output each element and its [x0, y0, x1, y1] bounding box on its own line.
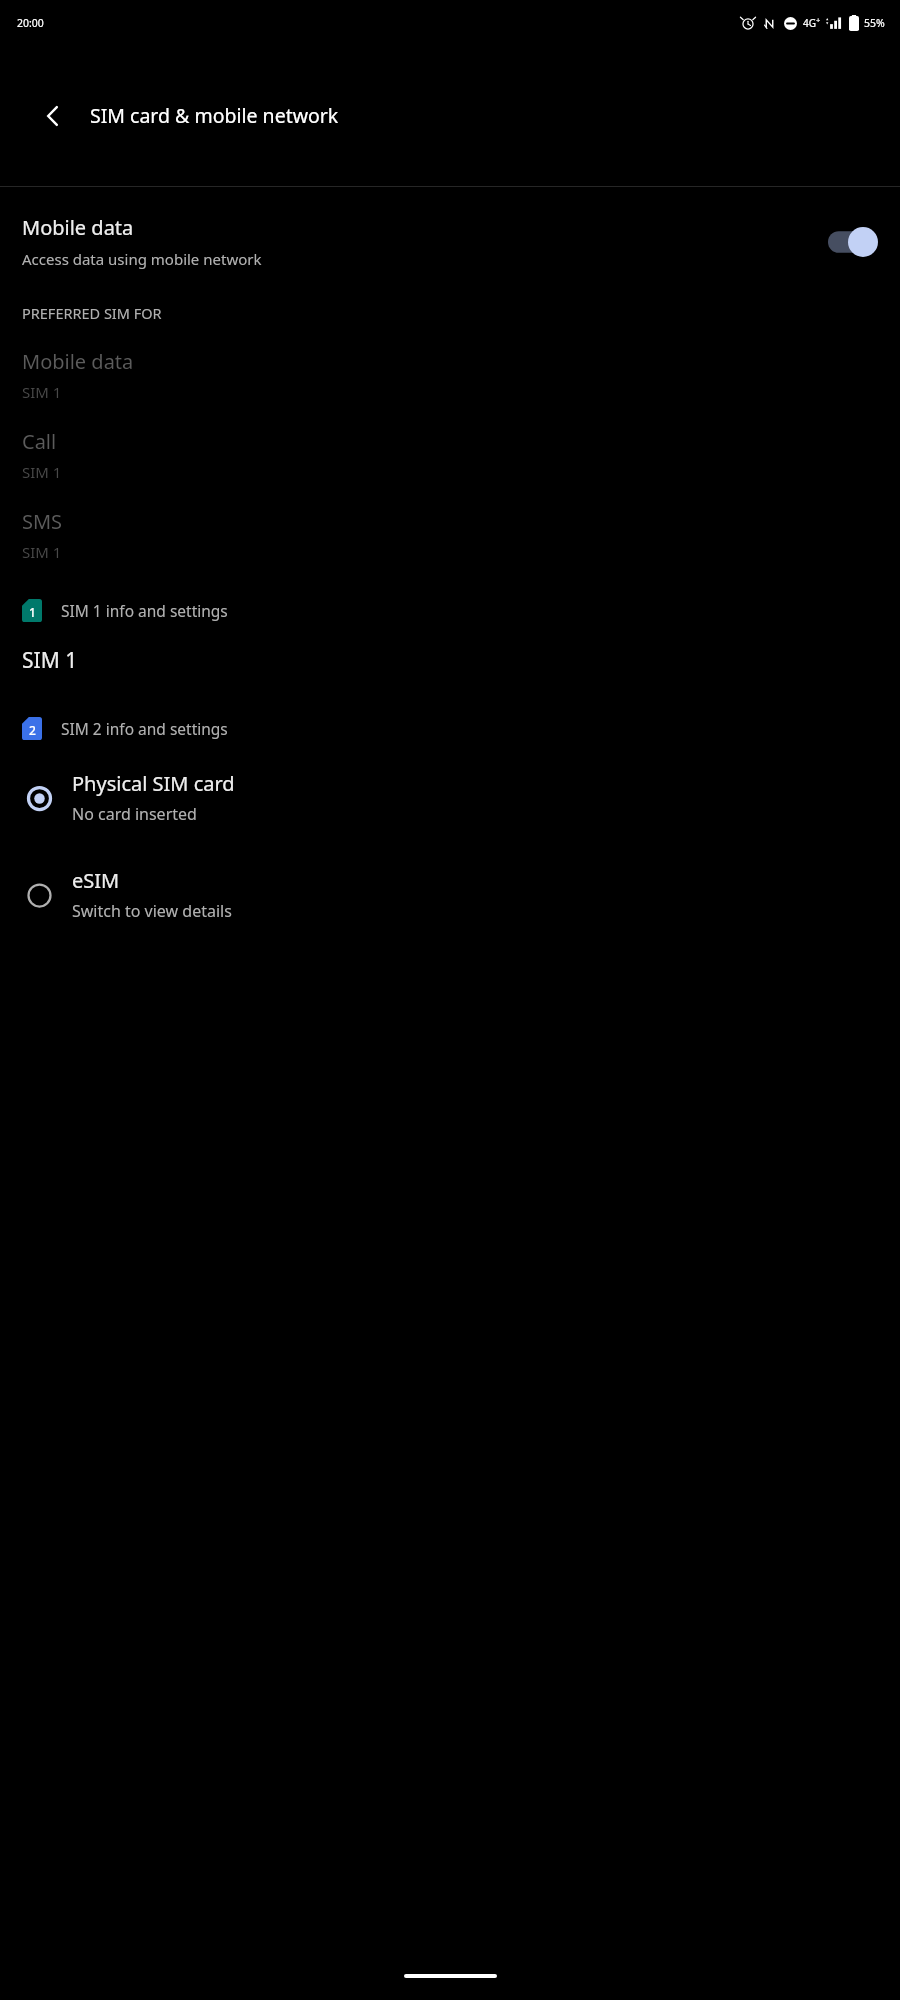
- staticText: Mobile data: [22, 214, 134, 241]
- staticText: PREFERRED SIM FOR: [22, 303, 162, 323]
- button[interactable]: Mobile data: [0, 200, 900, 283]
- staticText: SIM 1: [22, 542, 62, 562]
- button[interactable]: Back: [30, 93, 76, 139]
- button[interactable]: 2: [0, 713, 900, 744]
- staticText: SIM 1: [22, 462, 62, 482]
- staticText: SIM card & mobile network: [90, 102, 339, 129]
- staticText: Mobile data: [22, 348, 134, 375]
- button[interactable]: 1: [0, 595, 900, 626]
- button[interactable]: SMS: [0, 508, 900, 562]
- button[interactable]: Call: [0, 428, 900, 482]
- button[interactable]: eSIM: [0, 855, 900, 934]
- staticText: eSIM: [72, 867, 120, 894]
- staticText: 1: [29, 604, 36, 620]
- staticText: SIM 1: [22, 646, 78, 675]
- staticText: Physical SIM card: [72, 770, 235, 797]
- button[interactable]: Mobile data: [0, 348, 900, 402]
- staticText: 2: [29, 722, 36, 738]
- staticText: SMS: [22, 508, 63, 535]
- staticText: 4G: [803, 16, 816, 30]
- staticText: No card inserted: [72, 803, 197, 825]
- staticText: Switch to view details: [72, 900, 232, 922]
- staticText: 20:00: [17, 16, 44, 30]
- staticText: 55%: [864, 16, 885, 30]
- button[interactable]: Mobile data toggle: [828, 227, 878, 257]
- button[interactable]: Physical SIM card: [0, 758, 900, 837]
- staticText: SIM 2 info and settings: [61, 718, 228, 739]
- staticText: +: [816, 15, 821, 25]
- staticText: SIM 1 info and settings: [61, 600, 228, 621]
- staticText: Access data using mobile network: [22, 249, 262, 269]
- staticText: Call: [22, 428, 57, 455]
- staticText: SIM 1: [22, 382, 62, 402]
